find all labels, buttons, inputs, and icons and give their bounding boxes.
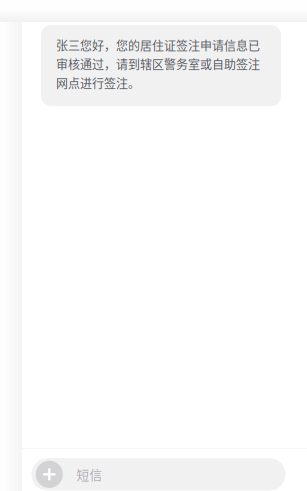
staticText: 网点进行签注。 [56,74,140,92]
button[interactable]: Add attachment [36,461,63,488]
staticText: 审核通过，请到辖区警务室或自助签注 [56,55,260,73]
staticText: 张三您好，您的居住证签注申请信息已 [56,36,260,54]
button[interactable]: 短信 [63,458,172,491]
staticText: 短信 [76,465,102,483]
